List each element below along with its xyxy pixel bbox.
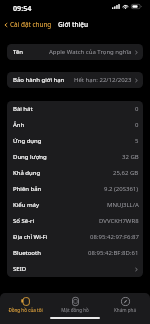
staticText: Mặt đồng hồ <box>61 307 89 313</box>
staticText: SEID <box>13 265 27 273</box>
staticText: Ứng dụng <box>13 137 42 145</box>
button[interactable]: Số Sê-ri <box>7 213 143 229</box>
button[interactable]: Khám phá <box>100 297 150 314</box>
staticText: Bài hát <box>13 105 33 113</box>
staticText: Bảo hành giới hạn <box>13 76 65 84</box>
staticText: 09:54 <box>13 3 32 13</box>
staticText: DVVCKH7WR8 <box>99 217 139 225</box>
button[interactable]: Dung lượng <box>7 149 143 165</box>
staticText: 5 <box>135 137 139 145</box>
button[interactable]: Khả dụng <box>7 165 143 181</box>
button[interactable]: Bluetooth <box>7 245 143 261</box>
staticText: 32 GB <box>122 153 139 161</box>
staticText: Phiên bản <box>13 185 42 193</box>
staticText: Hết hạn: 22/12/2023 <box>74 76 132 84</box>
staticText: Dung lượng <box>13 153 47 161</box>
staticText: 9.2 (20S361) <box>104 185 139 193</box>
staticText: Bluetooth <box>13 249 41 257</box>
staticText: Số Sê-ri <box>13 217 35 225</box>
staticText: Ảnh <box>13 121 25 129</box>
button[interactable]: Ứng dụng <box>7 133 143 149</box>
staticText: Địa chỉ Wi-Fi <box>13 233 48 241</box>
staticText: Đồng hồ của tôi <box>8 307 43 313</box>
button[interactable]: Phiên bản <box>7 181 143 197</box>
button[interactable]: Bảo hành giới hạn <box>7 72 143 88</box>
button[interactable]: Cài đặt chung <box>3 20 52 29</box>
button[interactable]: Kiểu máy <box>7 197 143 213</box>
button[interactable]: SEID <box>7 261 143 277</box>
staticText: 25,62 GB <box>113 169 139 177</box>
staticText: 08:95:42:BF:8D:61 <box>88 249 139 257</box>
staticText: Apple Watch của Trọng nghĩa <box>49 48 132 56</box>
button[interactable]: Mặt đồng hồ <box>50 297 100 314</box>
staticText: Giới thiệu <box>58 20 89 29</box>
staticText: 0 <box>135 121 139 129</box>
staticText: Khả dụng <box>13 169 41 177</box>
button[interactable]: Bài hát <box>7 101 143 117</box>
staticText: 0 <box>135 105 139 113</box>
staticText: Kiểu máy <box>13 201 39 209</box>
button[interactable]: Ảnh <box>7 117 143 133</box>
button[interactable]: Tên <box>7 44 143 60</box>
staticText: MNUJ3LL/A <box>107 201 139 209</box>
staticText: Khám phá <box>114 307 136 313</box>
staticText: Tên <box>13 48 24 56</box>
staticText: Cài đặt chung <box>10 20 52 29</box>
staticText: 08:95:42:97:F6:87 <box>90 233 139 241</box>
button[interactable]: Đồng hồ của tôi <box>0 297 50 314</box>
button[interactable]: Địa chỉ Wi-Fi <box>7 229 143 245</box>
